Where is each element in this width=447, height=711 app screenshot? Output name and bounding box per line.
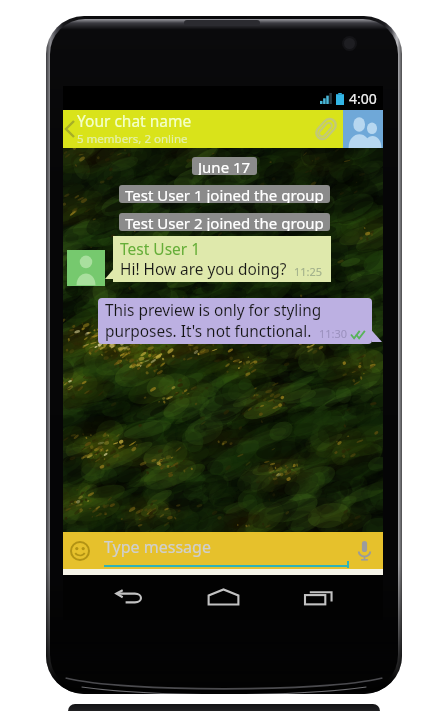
- button[interactable]: June 17: [198, 157, 251, 175]
- staticText: 11:30: [319, 326, 348, 341]
- staticText: 4:00: [349, 89, 377, 108]
- staticText: 5 members, 2 online: [77, 131, 188, 147]
- staticText: Test User 2 joined the group: [125, 213, 324, 231]
- button[interactable]: Test User 1: [120, 238, 323, 280]
- staticText: 11:25: [294, 264, 323, 279]
- button[interactable]: Type message: [104, 532, 371, 569]
- staticText: Test User 1 joined the group: [125, 185, 324, 203]
- button[interactable]: Recents: [285, 575, 351, 620]
- staticText: This preview is only for styling: [105, 300, 322, 321]
- button[interactable]: Emoji: [63, 532, 97, 569]
- staticText: Hi! How are you doing?: [120, 259, 287, 280]
- staticText: purposes. It's not functional.: [105, 321, 312, 342]
- button[interactable]: Back: [95, 575, 161, 620]
- button[interactable]: Test User 1 joined the group: [125, 185, 324, 203]
- staticText: Type message: [104, 536, 211, 558]
- button[interactable]: Attach: [309, 110, 343, 148]
- button[interactable]: This preview is only for styling: [105, 300, 365, 342]
- button[interactable]: [343, 110, 383, 148]
- button[interactable]: Home: [190, 575, 256, 620]
- button[interactable]: Back: [63, 110, 77, 148]
- button[interactable]: Voice message: [345, 532, 383, 569]
- staticText: Test User 1: [120, 238, 201, 259]
- staticText: Your chat name: [77, 110, 192, 131]
- button[interactable]: [67, 250, 105, 286]
- staticText: June 17: [198, 157, 251, 175]
- button[interactable]: Test User 2 joined the group: [125, 213, 324, 231]
